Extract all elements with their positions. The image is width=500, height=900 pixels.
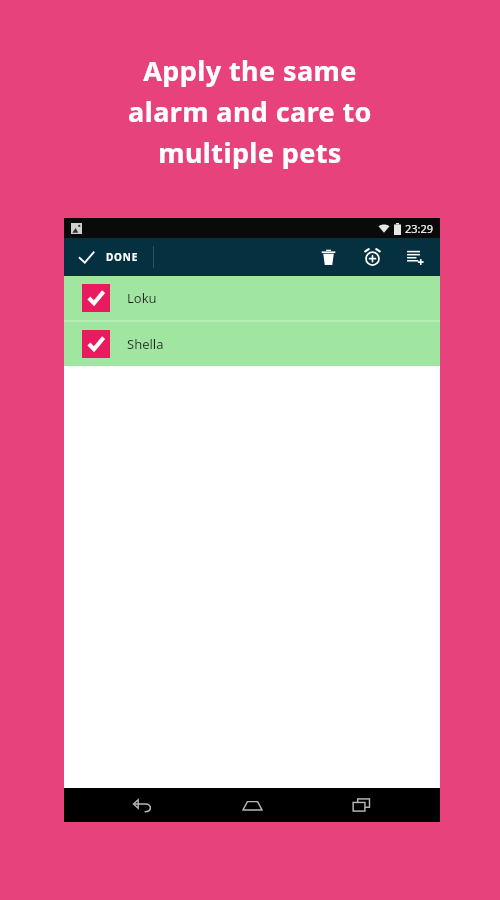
button[interactable]: Shella bbox=[64, 322, 440, 366]
button[interactable]: Add alarm bbox=[350, 238, 394, 276]
staticText: Apply the same bbox=[143, 52, 357, 89]
button[interactable]: Add to list bbox=[394, 238, 436, 276]
button[interactable]: Back bbox=[113, 788, 173, 822]
staticText: multiple pets bbox=[158, 134, 342, 171]
button[interactable]: DONE bbox=[64, 238, 153, 276]
staticText: Shella bbox=[127, 335, 164, 353]
staticText: alarm and care to bbox=[128, 93, 372, 130]
button[interactable]: Home bbox=[222, 788, 282, 822]
button[interactable]: Delete bbox=[306, 238, 350, 276]
staticText: 23:29 bbox=[405, 221, 434, 236]
staticText: Loku bbox=[127, 289, 157, 307]
button[interactable]: Loku bbox=[64, 276, 440, 320]
staticText: DONE bbox=[106, 250, 139, 264]
button[interactable]: Recent apps bbox=[331, 788, 391, 822]
